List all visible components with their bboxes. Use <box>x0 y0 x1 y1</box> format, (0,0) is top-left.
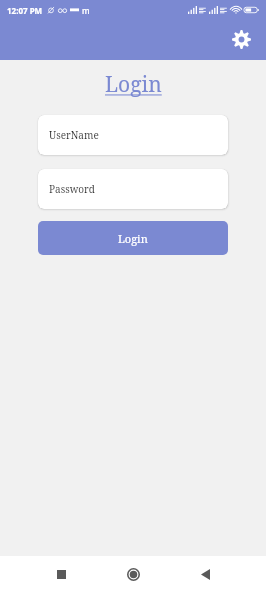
staticText: Login <box>118 231 148 246</box>
staticText: UserName <box>49 128 99 142</box>
staticText: 12:07 PM <box>7 5 43 16</box>
button[interactable]: Home <box>118 559 148 589</box>
staticText: m <box>82 5 90 16</box>
button[interactable]: Settings <box>224 22 258 56</box>
button[interactable]: UserName <box>38 115 228 155</box>
staticText: Password <box>49 182 95 196</box>
button[interactable]: Recent apps <box>46 559 76 589</box>
button[interactable]: Login <box>38 221 228 255</box>
button[interactable]: Login <box>105 70 162 99</box>
button[interactable]: Back <box>190 559 220 589</box>
button[interactable]: Password <box>38 169 228 209</box>
